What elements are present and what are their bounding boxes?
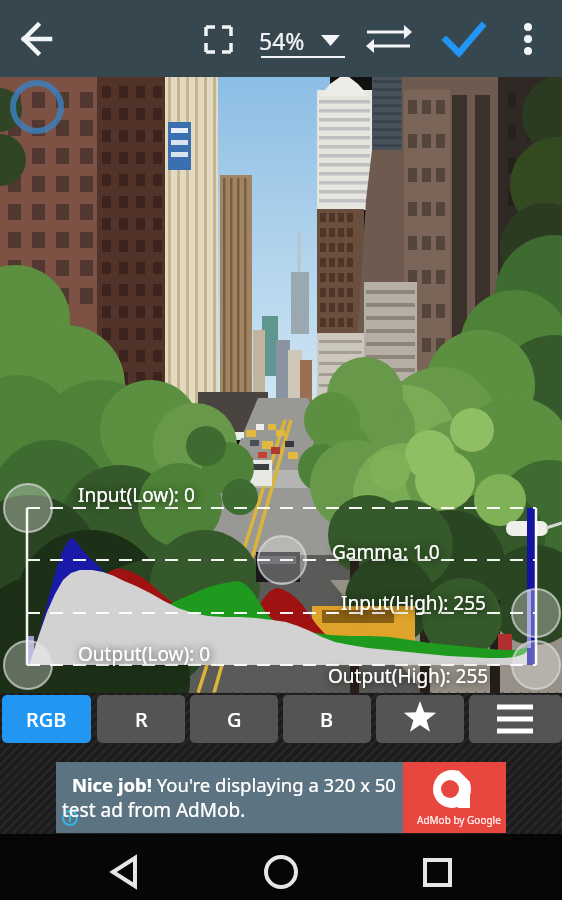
staticText: 54% (259, 25, 305, 56)
button[interactable] (95, 845, 155, 895)
staticText: Gamma: 1.0 (332, 539, 440, 565)
button[interactable]: B (283, 693, 371, 745)
staticText: Output(High): 255 (328, 663, 489, 689)
button[interactable] (251, 845, 311, 895)
staticText: AdMob by Google (417, 813, 501, 827)
button[interactable] (407, 845, 467, 895)
button[interactable] (256, 14, 348, 64)
button[interactable] (12, 14, 62, 64)
button[interactable]: G (190, 693, 278, 745)
staticText: Output(Low): 0 (78, 641, 211, 667)
button[interactable] (56, 762, 506, 830)
staticText: Nice job! You're displaying a 320 x 50 (72, 772, 396, 797)
staticText: B (320, 706, 334, 733)
button[interactable]: RGB (0, 693, 92, 745)
button[interactable]: R (97, 693, 185, 745)
staticText: Input(High): 255 (341, 590, 486, 616)
button[interactable] (506, 14, 550, 64)
staticText: RGB (26, 706, 67, 733)
staticText: Input(Low): 0 (78, 482, 195, 508)
staticText: test ad from AdMob. (62, 797, 246, 823)
staticText: R (135, 706, 148, 733)
button[interactable] (469, 693, 562, 745)
button[interactable] (438, 14, 490, 64)
button[interactable] (376, 693, 464, 745)
staticText: G (227, 706, 242, 733)
button[interactable] (193, 14, 243, 64)
button[interactable] (363, 14, 415, 64)
